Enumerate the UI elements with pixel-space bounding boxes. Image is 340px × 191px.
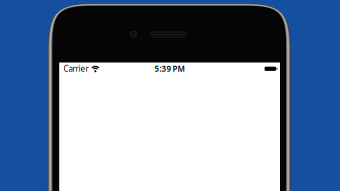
staticText: 5:39 PM	[155, 63, 185, 74]
staticText: Carrier	[64, 63, 89, 74]
